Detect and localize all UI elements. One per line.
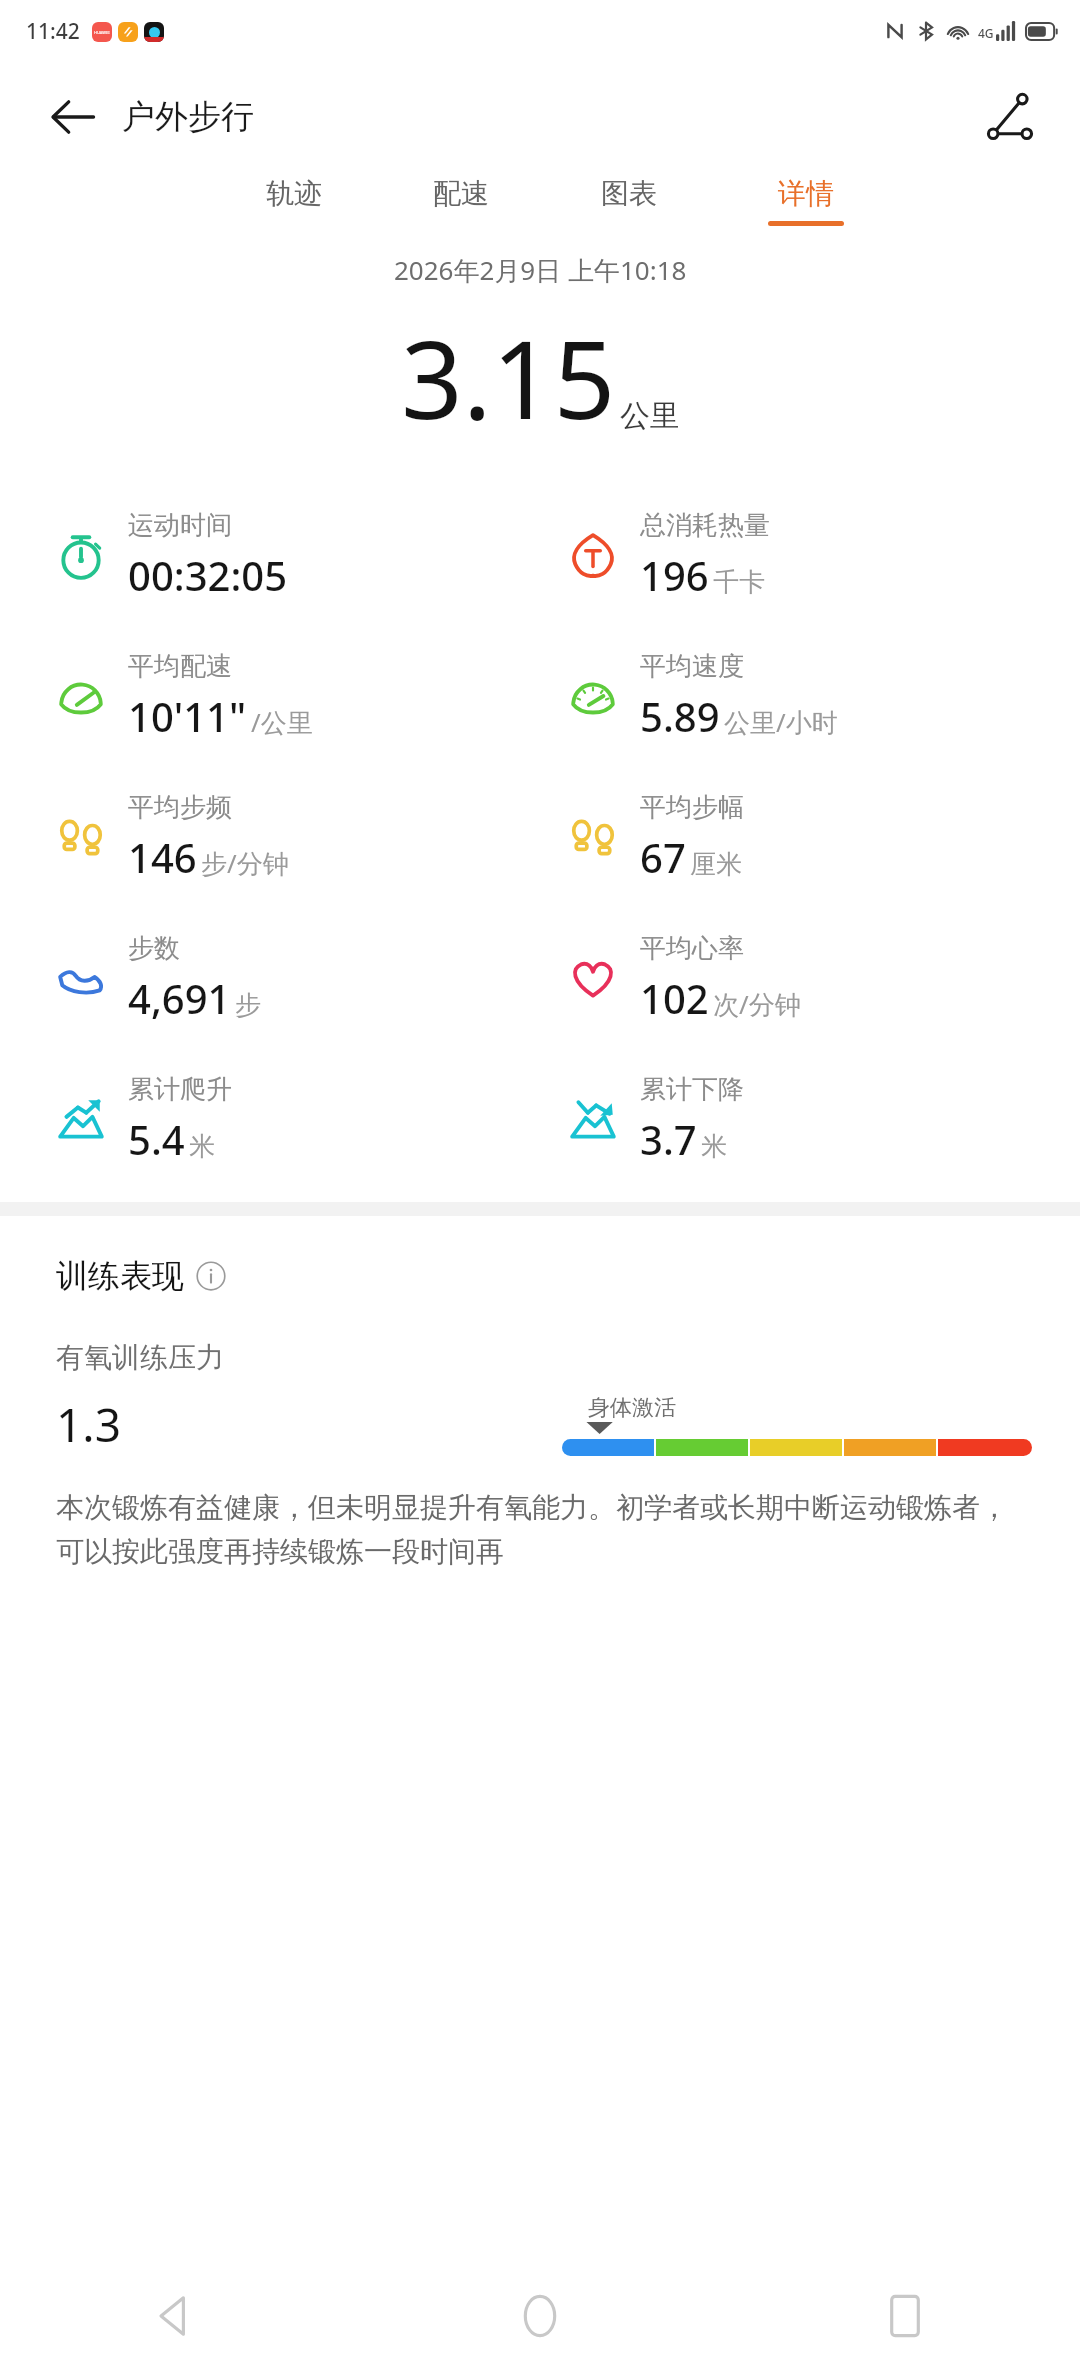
other: Info <box>196 1261 226 1291</box>
staticText: 67 <box>640 830 686 884</box>
staticText: HUAWEI <box>94 30 110 35</box>
staticText: 4,691 <box>128 971 231 1025</box>
staticText: 详情 <box>778 176 834 211</box>
button[interactable]: 训练表现 <box>56 1256 226 1296</box>
staticText: 5.89 <box>640 689 720 743</box>
staticText: 总消耗热量 <box>640 509 770 542</box>
staticText: 146 <box>128 830 197 884</box>
staticText: 步 <box>235 989 261 1022</box>
staticText: 米 <box>189 1130 215 1163</box>
button[interactable]: 平均步频 <box>52 767 540 908</box>
staticText: 厘米 <box>690 848 742 881</box>
staticText: 平均心率 <box>640 932 744 965</box>
staticText: 4G <box>978 25 994 41</box>
staticText: 00:32:05 <box>128 548 288 602</box>
button[interactable]: 图表 <box>595 172 663 230</box>
staticText: 2026年2月9日 上午10:18 <box>394 252 687 288</box>
staticText: 身体激活 <box>588 1394 676 1422</box>
staticText: /公里 <box>251 704 313 740</box>
staticText: 102 <box>640 971 709 1025</box>
staticText: 平均步频 <box>128 791 232 824</box>
staticText: 公里 <box>620 397 680 435</box>
staticText: 10'11" <box>128 689 247 743</box>
button[interactable]: 累计下降 <box>564 1049 1080 1190</box>
button[interactable]: 运动时间 <box>52 485 540 626</box>
staticText: 累计下降 <box>640 1073 744 1106</box>
staticText: 有氧训练压力 <box>56 1340 224 1375</box>
staticText: 本次锻炼有益健康，但未明显提升有氧能力。初学者或长期中断运动锻炼者，可以按此强度… <box>56 1490 1032 1569</box>
button[interactable]: 步数 <box>52 908 540 1049</box>
staticText: 平均步幅 <box>640 791 744 824</box>
staticText: 平均配速 <box>128 650 232 683</box>
button[interactable]: 平均配速 <box>52 626 540 767</box>
button[interactable]: Back <box>140 2281 210 2351</box>
button[interactable]: 平均步幅 <box>564 767 1080 908</box>
staticText: 步数 <box>128 932 180 965</box>
staticText: 累计爬升 <box>128 1073 232 1106</box>
staticText: 图表 <box>601 176 657 211</box>
staticText: 步/分钟 <box>201 845 289 881</box>
staticText: 5.4 <box>128 1112 185 1166</box>
staticText: 千卡 <box>713 566 765 599</box>
staticText: 配速 <box>433 176 489 211</box>
button[interactable]: Share <box>982 89 1038 145</box>
staticText: 次/分钟 <box>713 986 801 1022</box>
button[interactable]: 详情 <box>762 172 850 230</box>
staticText: 米 <box>701 1130 727 1163</box>
staticText: 平均速度 <box>640 650 744 683</box>
button[interactable]: Back <box>46 90 100 144</box>
button[interactable]: Home <box>505 2281 575 2351</box>
staticText: 1.3 <box>56 1393 121 1456</box>
button[interactable]: 轨迹 <box>260 172 328 230</box>
button[interactable]: 平均心率 <box>564 908 1080 1049</box>
button[interactable]: Recents <box>870 2281 940 2351</box>
staticText: 运动时间 <box>128 509 232 542</box>
button[interactable]: 平均速度 <box>564 626 1080 767</box>
button[interactable]: 累计爬升 <box>52 1049 540 1190</box>
button[interactable]: 配速 <box>427 172 495 230</box>
button[interactable]: 总消耗热量 <box>564 485 1080 626</box>
staticText: 轨迹 <box>266 176 322 211</box>
staticText: 训练表现 <box>56 1256 184 1296</box>
staticText: 公里/小时 <box>724 704 838 740</box>
staticText: 户外步行 <box>122 96 254 138</box>
staticText: 3.7 <box>640 1112 697 1166</box>
staticText: 11:42 <box>26 17 80 46</box>
staticText: 3.15 <box>401 304 616 451</box>
staticText: 196 <box>640 548 709 602</box>
